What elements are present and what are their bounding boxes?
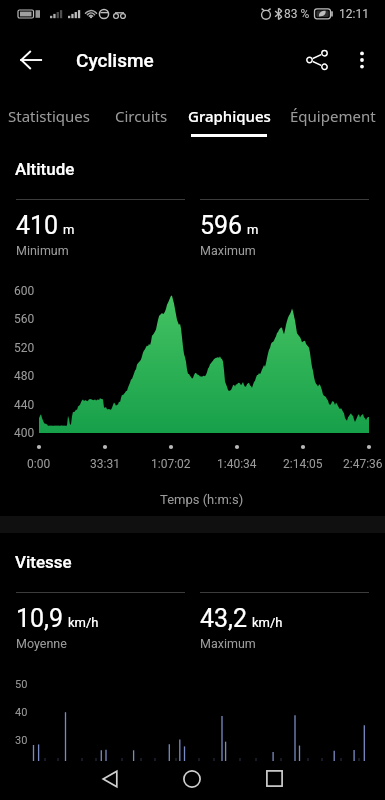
- staticText: 400: [14, 426, 35, 440]
- button[interactable]: Statistiques: [0, 88, 101, 144]
- staticText: Maximum: [200, 243, 256, 258]
- staticText: 520: [14, 341, 35, 355]
- staticText: Circuits: [115, 106, 168, 126]
- button[interactable]: More options: [341, 39, 383, 81]
- button[interactable]: Back: [14, 43, 48, 77]
- staticText: 560: [14, 312, 35, 326]
- staticText: km/h: [68, 615, 99, 630]
- staticText: Temps (h:m:s): [160, 492, 244, 507]
- staticText: Moyenne: [16, 636, 67, 651]
- staticText: Cyclisme: [76, 49, 154, 71]
- staticText: 596: [200, 211, 243, 240]
- button[interactable]: Graphiques: [177, 88, 281, 144]
- staticText: 12:11: [339, 7, 369, 21]
- staticText: 480: [14, 369, 35, 383]
- button[interactable]: Home: [168, 759, 216, 798]
- staticText: m: [247, 222, 259, 237]
- staticText: Minimum: [16, 243, 69, 258]
- staticText: 83 %: [284, 7, 310, 21]
- staticText: 50: [15, 678, 28, 691]
- staticText: Vitesse: [15, 552, 72, 572]
- staticText: 40: [15, 706, 28, 719]
- staticText: 410: [16, 211, 59, 240]
- button[interactable]: Back: [86, 759, 134, 798]
- staticText: 30: [15, 734, 28, 747]
- button[interactable]: Équipement: [281, 88, 385, 144]
- staticText: 600: [14, 284, 35, 298]
- staticText: Statistiques: [8, 106, 90, 126]
- staticText: 0:00: [27, 457, 51, 471]
- staticText: Maximum: [200, 636, 256, 651]
- staticText: Altitude: [15, 159, 75, 179]
- button[interactable]: Circuits: [89, 88, 193, 144]
- staticText: 2:14:05: [283, 457, 323, 471]
- staticText: Équipement: [290, 106, 376, 126]
- staticText: Graphiques: [188, 106, 271, 126]
- staticText: m: [63, 222, 75, 237]
- staticText: 10,9: [16, 604, 64, 633]
- staticText: 33:31: [90, 457, 120, 471]
- staticText: 2:47:36: [343, 457, 383, 471]
- staticText: 440: [14, 398, 35, 412]
- staticText: 43,2: [200, 604, 248, 633]
- staticText: km/h: [252, 615, 283, 630]
- staticText: 1:40:34: [217, 457, 257, 471]
- button[interactable]: Share: [296, 39, 338, 81]
- staticText: 1:07:02: [151, 457, 191, 471]
- button[interactable]: Recent apps: [250, 759, 298, 798]
